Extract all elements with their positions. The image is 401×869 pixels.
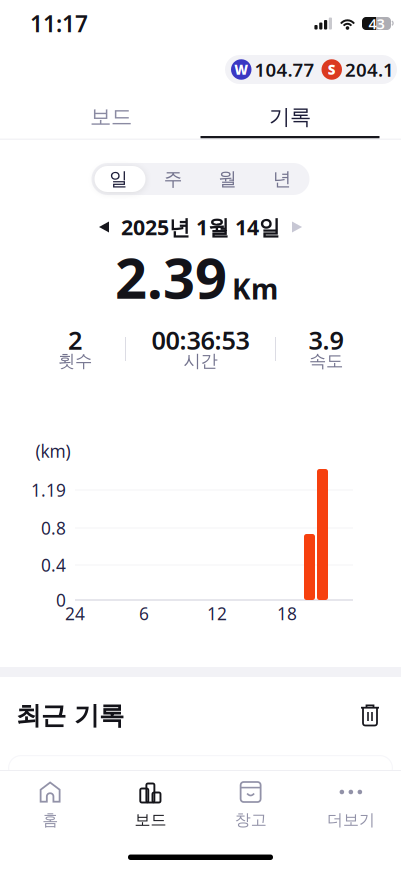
- staticText: 3.9: [308, 323, 343, 357]
- staticText: (km): [35, 439, 70, 462]
- staticText: 월: [218, 167, 237, 190]
- staticText: 2: [68, 323, 82, 357]
- button[interactable]: 지갑 잔액: [225, 55, 397, 84]
- staticText: 12: [207, 602, 227, 625]
- staticText: 00:36:53: [151, 323, 249, 357]
- staticText: W: [234, 61, 248, 78]
- staticText: 기록: [269, 104, 311, 130]
- button[interactable]: 주: [146, 163, 200, 195]
- staticText: 홈: [42, 810, 58, 830]
- button[interactable]: 보드: [100, 781, 200, 830]
- staticText: 24: [65, 602, 85, 625]
- staticText: 시간: [183, 350, 217, 372]
- staticText: 204.1: [345, 57, 394, 82]
- staticText: 43: [368, 14, 384, 33]
- button[interactable]: 더보기: [301, 781, 401, 830]
- staticText: 더보기: [327, 810, 375, 830]
- staticText: 최근 기록: [16, 700, 124, 731]
- button[interactable]: 기록: [200, 98, 379, 138]
- staticText: 104.77: [254, 57, 314, 82]
- button[interactable]: 홈: [0, 781, 100, 830]
- button[interactable]: 일: [91, 163, 146, 195]
- staticText: 년: [273, 167, 292, 190]
- button[interactable]: 년: [255, 163, 309, 195]
- button[interactable]: 창고: [200, 781, 301, 830]
- button[interactable]: 보드: [21, 98, 200, 138]
- staticText: 2.39: [115, 240, 227, 314]
- staticText: 속도: [309, 350, 343, 372]
- staticText: 보드: [134, 810, 166, 830]
- staticText: 18: [277, 602, 297, 625]
- staticText: 주: [164, 167, 183, 190]
- staticText: S: [328, 61, 336, 78]
- button[interactable]: 다음 날짜: [288, 217, 306, 236]
- staticText: 2025년 1월 14일: [121, 213, 280, 241]
- staticText: 창고: [235, 810, 267, 830]
- staticText: 0: [56, 588, 66, 611]
- staticText: 0.8: [41, 516, 66, 539]
- staticText: Km: [232, 270, 278, 307]
- staticText: 6: [139, 602, 149, 625]
- button[interactable]: 기록 삭제: [357, 700, 383, 730]
- staticText: 11:17: [30, 8, 88, 38]
- staticText: 1.19: [31, 478, 66, 501]
- button[interactable]: 이전 날짜: [95, 217, 113, 236]
- button[interactable]: 월: [200, 163, 255, 195]
- staticText: 보드: [90, 104, 132, 130]
- staticText: 일: [109, 167, 128, 190]
- staticText: 0.4: [41, 553, 66, 576]
- staticText: 횟수: [58, 350, 92, 372]
